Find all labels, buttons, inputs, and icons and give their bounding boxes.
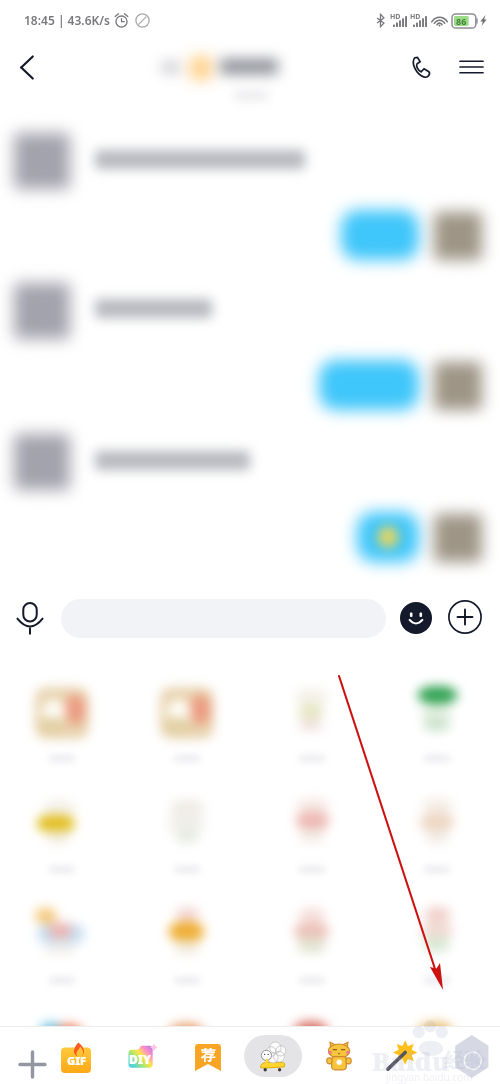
button[interactable]: Sticker xyxy=(278,907,346,1003)
button[interactable]: Voice input xyxy=(6,594,54,642)
button[interactable] xyxy=(156,50,306,90)
staticText: 荐 xyxy=(201,1047,215,1065)
button[interactable]: DIY xyxy=(119,1035,163,1079)
button[interactable]: Emoji xyxy=(394,596,438,640)
button[interactable]: Sticker xyxy=(278,685,346,781)
button[interactable]: Sticker xyxy=(403,1018,471,1084)
staticText: Baidu xyxy=(372,1044,450,1078)
button[interactable]: Cat sticker pack xyxy=(315,1032,363,1080)
staticText: 86 xyxy=(456,15,467,27)
button[interactable]: Sticker xyxy=(153,907,221,1003)
button[interactable]: Sticker xyxy=(278,796,346,892)
button[interactable]: Magic wand xyxy=(378,1033,426,1081)
staticText: GIF xyxy=(67,1053,86,1068)
staticText: HD xyxy=(390,12,401,22)
button[interactable]: Call xyxy=(401,47,441,87)
button[interactable]: Add sticker pack xyxy=(8,1040,56,1084)
button[interactable]: Recommended xyxy=(186,1035,230,1079)
staticText: HD xyxy=(410,12,421,22)
button[interactable]: Sticker xyxy=(403,685,471,781)
button[interactable]: Sticker xyxy=(278,1018,346,1084)
staticText: 18:45 | 43.6K/s xyxy=(24,12,110,28)
button[interactable]: Sticker xyxy=(153,685,221,781)
button[interactable]: Sticker xyxy=(28,1018,96,1084)
button[interactable]: Sticker xyxy=(403,907,471,1003)
button[interactable]: Menu xyxy=(451,47,491,87)
button[interactable]: Sheep sticker pack xyxy=(244,1033,302,1079)
staticText: jingyan.baidu.com xyxy=(386,1070,473,1084)
button[interactable]: Back xyxy=(6,46,48,88)
staticText: DIY xyxy=(129,1051,152,1067)
staticText: 经验 xyxy=(444,1048,486,1074)
button[interactable]: Sticker xyxy=(403,796,471,892)
button[interactable]: Sticker xyxy=(28,796,96,892)
button[interactable]: Sticker xyxy=(153,796,221,892)
button[interactable]: Sticker xyxy=(28,685,96,781)
button[interactable]: More xyxy=(443,595,487,639)
button[interactable]: Sticker xyxy=(153,1018,221,1084)
button[interactable]: Sticker xyxy=(28,907,96,1003)
button[interactable]: GIF xyxy=(54,1035,98,1079)
